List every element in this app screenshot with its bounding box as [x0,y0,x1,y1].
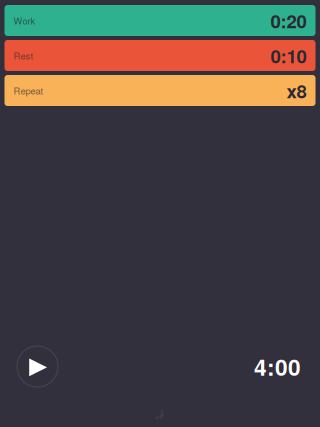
button[interactable]: Repeat [4,75,315,106]
button[interactable]: Rest [4,40,315,71]
staticText: x8 [286,77,306,104]
button[interactable]: Work [4,5,315,36]
staticText: 4:00 [254,350,301,383]
staticText: Work [13,14,35,27]
staticText: 0:20 [270,7,306,34]
staticText: Rest [13,49,33,62]
staticText: 0:10 [270,42,306,69]
staticText: Repeat [13,84,43,97]
button[interactable]: Start timer [17,346,58,387]
